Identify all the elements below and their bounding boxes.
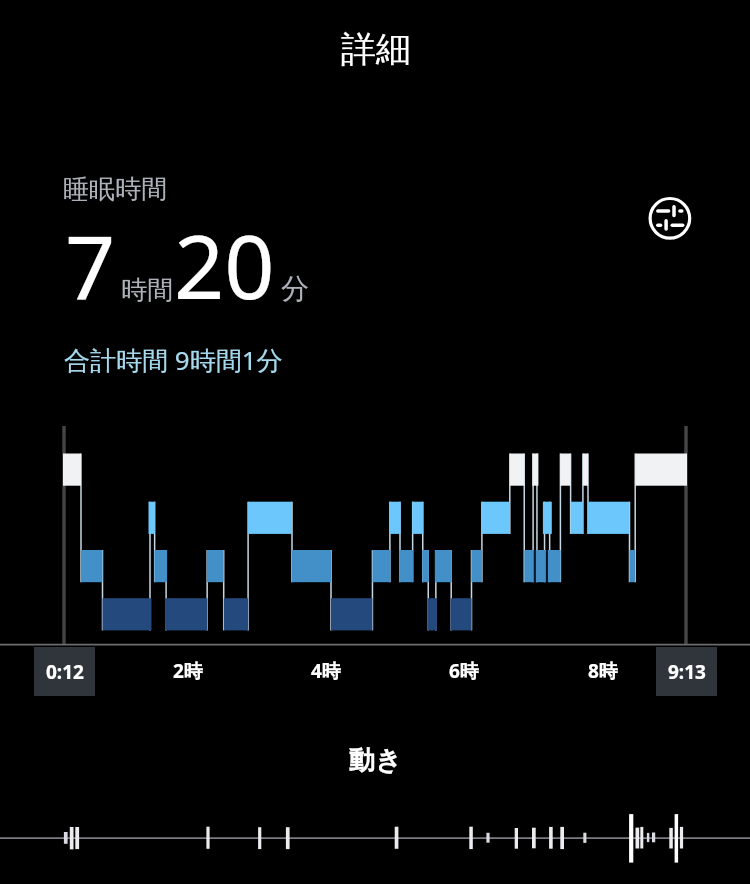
staticText: 7: [65, 206, 116, 326]
staticText: 6時: [449, 658, 479, 684]
button[interactable]: 9:13: [656, 647, 717, 696]
staticText: 8時: [588, 658, 618, 684]
button[interactable]: 0:12: [34, 647, 95, 696]
staticText: 睡眠時間: [63, 173, 167, 206]
button[interactable]: Sleep stage chart: [0, 420, 750, 646]
button[interactable]: Sleep chart settings: [645, 193, 695, 243]
staticText: 詳細: [341, 27, 411, 71]
staticText: 4時: [311, 658, 341, 684]
button[interactable]: Movement graph: [0, 800, 750, 884]
staticText: 時間: [121, 274, 173, 307]
staticText: 0:12: [46, 659, 84, 685]
staticText: 2時: [173, 658, 203, 684]
staticText: 分: [281, 271, 309, 306]
staticText: 20: [174, 205, 275, 325]
staticText: 9:13: [668, 659, 706, 685]
staticText: 合計時間 9時間1分: [64, 342, 283, 378]
staticText: 動き: [349, 744, 402, 777]
